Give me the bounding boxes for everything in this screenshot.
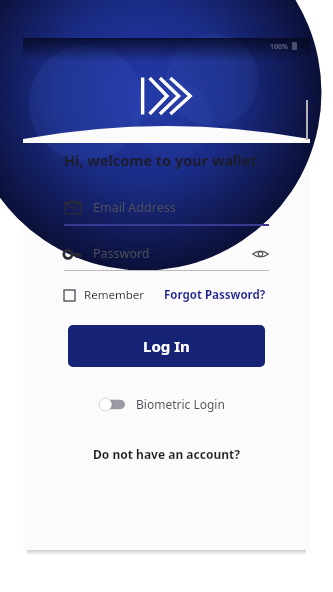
button[interactable]: Biometric Login [99, 396, 310, 412]
button[interactable]: Do not have an account? [23, 446, 310, 462]
button[interactable]: Password [64, 245, 269, 271]
staticText: 100% [270, 42, 288, 52]
staticText: Biometric Login [136, 396, 225, 412]
staticText: Email Address [93, 199, 176, 216]
staticText: Password [93, 245, 150, 262]
staticText: Log In [143, 336, 190, 356]
staticText: Hi, welcome to your wallet [64, 150, 257, 170]
staticText: Remember [84, 287, 144, 303]
button[interactable]: Email Address [64, 199, 269, 226]
button[interactable]: Forgot Password? [164, 287, 266, 303]
button[interactable]: Show password [252, 248, 269, 260]
button[interactable]: Log In [68, 325, 265, 367]
button[interactable]: Remember [64, 287, 144, 303]
